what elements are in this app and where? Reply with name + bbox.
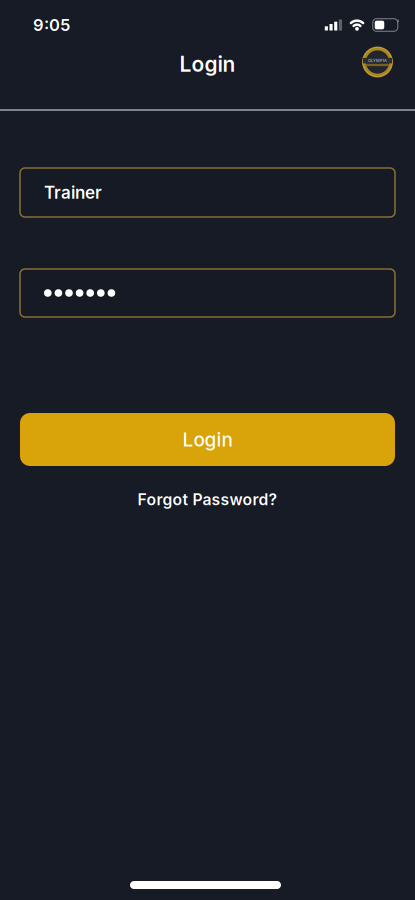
staticText: 9:05: [33, 15, 70, 35]
staticText: Login: [179, 51, 235, 77]
staticText: Forgot Password?: [137, 490, 277, 509]
staticText: Login: [182, 428, 232, 451]
button[interactable]: [20, 269, 395, 317]
button[interactable]: Login: [20, 413, 395, 466]
staticText: OLYMPIA: [368, 58, 387, 63]
button[interactable]: Forgot Password?: [137, 490, 277, 509]
staticText: Trainer: [44, 182, 102, 203]
button[interactable]: Trainer: [20, 168, 395, 217]
